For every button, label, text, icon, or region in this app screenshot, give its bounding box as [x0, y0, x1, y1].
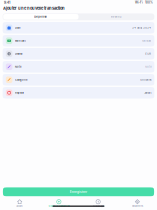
staticText: Catégorie	[15, 78, 27, 81]
staticText: Revenu	[111, 15, 122, 18]
staticText: Jamais	[144, 91, 151, 94]
staticText: Ajouter une nouvelle transaction	[3, 6, 65, 11]
button[interactable]: Catégorie	[3, 74, 154, 85]
button[interactable]: Enregistrer	[3, 187, 154, 196]
staticText: Historique	[93, 205, 104, 207]
staticText: Montant	[142, 39, 151, 42]
button[interactable]: Paramètres	[118, 199, 157, 207]
button[interactable]: Note	[3, 61, 154, 72]
staticText: Accueil	[16, 205, 23, 207]
staticText: Dépense	[34, 15, 47, 18]
staticText: Répéter	[15, 91, 24, 94]
staticText: 9:41	[4, 1, 10, 4]
staticText: Enregistrer	[70, 190, 87, 193]
button[interactable]: Revenu	[78, 14, 154, 20]
button[interactable]: Montant	[3, 35, 154, 46]
button[interactable]: Nouvelle transaction	[39, 199, 78, 207]
staticText: Date	[15, 26, 20, 29]
staticText: 24 août 2024	[132, 26, 151, 29]
staticText: Wi-Fi 100%	[135, 1, 153, 4]
staticText: Note	[145, 65, 151, 68]
staticText: Devise	[15, 52, 22, 55]
button[interactable]: Historique	[78, 199, 118, 207]
staticText: Nouvelle transaction	[48, 205, 69, 207]
button[interactable]: Dépense	[3, 14, 78, 20]
staticText: EUR	[145, 52, 151, 55]
button[interactable]: Devise	[3, 48, 154, 59]
button[interactable]: Accueil	[0, 199, 39, 207]
button[interactable]: Date	[3, 22, 154, 33]
staticText: Montant	[15, 39, 26, 42]
staticText: Note	[15, 65, 21, 68]
staticText: Groceries	[140, 78, 151, 81]
staticText: Paramètres	[132, 205, 143, 207]
button[interactable]: Répéter	[3, 87, 154, 98]
